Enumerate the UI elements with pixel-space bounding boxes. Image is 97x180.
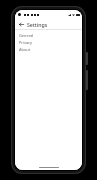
button[interactable]: General <box>15 32 82 39</box>
staticText: Privacy <box>19 40 32 45</box>
button[interactable]: Back <box>17 20 25 28</box>
button[interactable]: About <box>15 46 82 53</box>
staticText: General <box>19 33 34 38</box>
staticText: Settings <box>27 21 48 28</box>
button[interactable]: Privacy <box>15 39 82 46</box>
staticText: About <box>19 47 31 52</box>
